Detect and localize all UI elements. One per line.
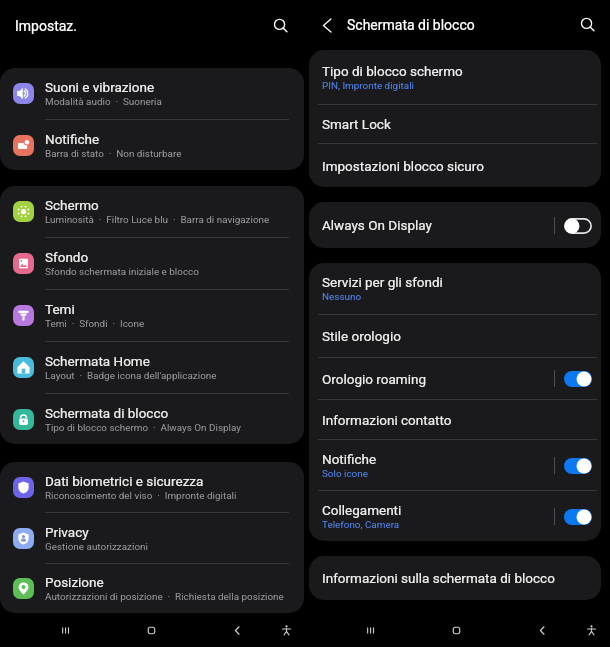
button[interactable]: Tipo di blocco schermo — [309, 50, 601, 105]
staticText: Schermata di blocco — [45, 405, 169, 421]
staticText: Impostazioni blocco sicuro — [322, 158, 484, 174]
button[interactable]: Recents — [355, 615, 385, 645]
staticText: Autorizzazioni di posizione · Richiesta … — [45, 591, 284, 603]
button[interactable]: Notifiche — [0, 120, 304, 170]
button[interactable]: Notifiche — [309, 440, 601, 491]
button[interactable]: Switch on — [564, 371, 592, 387]
staticText: Nessuno — [322, 291, 362, 303]
staticText: Posizione — [45, 574, 104, 590]
button[interactable]: Servizi per gli sfondi — [309, 263, 601, 315]
staticText: Schermo — [45, 197, 99, 213]
staticText: Telefono, Camera — [322, 519, 400, 531]
staticText: Dati biometrici e sicurezza — [45, 473, 204, 489]
staticText: Collegamenti — [322, 502, 402, 518]
button[interactable]: Stile orologio — [309, 315, 601, 358]
button[interactable]: Home — [136, 615, 166, 645]
staticText: Privacy — [45, 524, 89, 540]
staticText: Solo icone — [322, 468, 368, 480]
staticText: Tipo di blocco schermo — [322, 63, 463, 79]
staticText: Schermata di blocco — [347, 17, 475, 33]
staticText: Always On Display — [322, 217, 432, 233]
staticText: Notifiche — [322, 451, 377, 467]
button[interactable]: Recents — [50, 615, 80, 645]
staticText: Smart Lock — [322, 116, 391, 132]
button[interactable]: Search — [575, 12, 601, 38]
button[interactable]: Orologio roaming — [309, 358, 601, 400]
button[interactable]: Switch on — [564, 509, 592, 525]
staticText: Sfondo — [45, 249, 89, 265]
staticText: Riconoscimento del viso · Impronte digit… — [45, 490, 237, 502]
staticText: Suoni e vibrazione — [45, 79, 155, 95]
button[interactable]: Dati biometrici e sicurezza — [0, 462, 304, 513]
button[interactable]: Accessibility — [576, 615, 606, 645]
staticText: Informazioni sulla schermata di blocco — [322, 570, 555, 586]
button[interactable]: Suoni e vibrazione — [0, 68, 304, 120]
staticText: Modalità audio · Suoneria — [45, 96, 162, 108]
button[interactable]: Collegamenti — [309, 491, 601, 541]
button[interactable]: Home — [441, 615, 471, 645]
button[interactable]: Back — [222, 615, 252, 645]
staticText: Schermata Home — [45, 353, 150, 369]
button[interactable]: Switch on — [564, 458, 592, 474]
button[interactable]: Sfondo — [0, 238, 304, 290]
staticText: Barra di stato · Non disturbare — [45, 148, 182, 160]
button[interactable]: Smart Lock — [309, 105, 601, 144]
button[interactable]: Search — [268, 13, 294, 39]
staticText: Luminosità · Filtro Luce blu · Barra di … — [45, 214, 270, 226]
button[interactable]: Schermata di blocco — [0, 394, 304, 444]
staticText: PIN, Impronte digitali — [322, 80, 414, 92]
button[interactable]: Always On Display — [309, 202, 601, 248]
staticText: Servizi per gli sfondi — [322, 274, 443, 290]
button[interactable]: Schermata Home — [0, 342, 304, 394]
staticText: Temi · Sfondi · Icone — [45, 318, 145, 330]
staticText: Sfondo schermata iniziale e blocco — [45, 266, 199, 278]
staticText: Tipo di blocco schermo · Always On Displ… — [45, 422, 241, 434]
button[interactable]: Informazioni sulla schermata di blocco — [309, 556, 601, 600]
button[interactable]: Informazioni contatto — [309, 400, 601, 440]
staticText: Layout · Badge icona dell'applicazione — [45, 370, 217, 382]
button[interactable]: Schermo — [0, 186, 304, 238]
staticText: Informazioni contatto — [322, 412, 452, 428]
button[interactable]: Back — [527, 615, 557, 645]
staticText: Temi — [45, 301, 75, 317]
staticText: Notifiche — [45, 131, 100, 147]
staticText: Orologio roaming — [322, 371, 426, 387]
button[interactable]: Back — [314, 12, 340, 38]
staticText: Gestione autorizzazioni — [45, 541, 148, 553]
staticText: Stile orologio — [322, 328, 401, 344]
button[interactable]: Accessibility — [271, 615, 301, 645]
button[interactable]: Posizione — [0, 564, 304, 613]
button[interactable]: Temi — [0, 290, 304, 342]
button[interactable]: Impostazioni blocco sicuro — [309, 144, 601, 187]
button[interactable]: Privacy — [0, 513, 304, 564]
button[interactable]: Switch off — [564, 218, 592, 234]
staticText: Impostaz. — [15, 18, 77, 34]
